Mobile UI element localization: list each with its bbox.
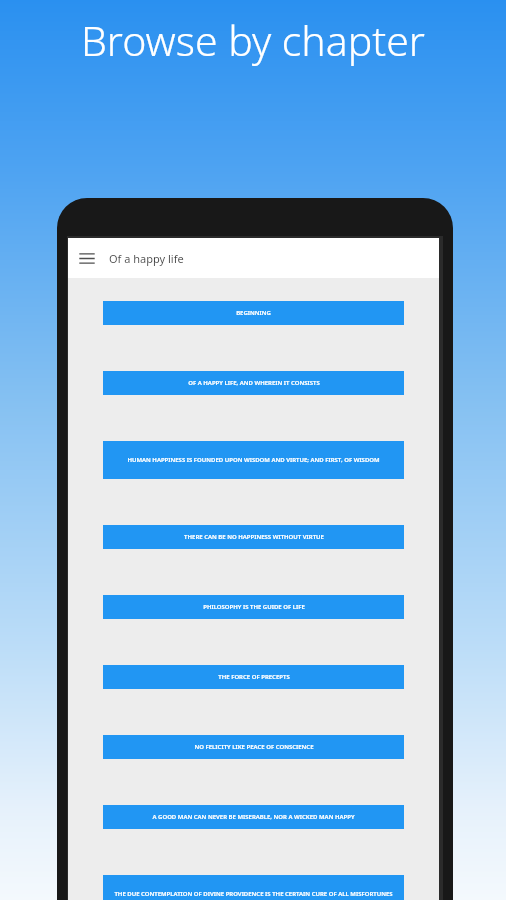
button[interactable]: BEGINNING — [103, 301, 404, 325]
button[interactable]: THE DUE CONTEMPLATION OF DIVINE PROVIDEN… — [103, 875, 404, 900]
button[interactable]: THE FORCE OF PRECEPTS — [103, 665, 404, 689]
button[interactable]: OF A HAPPY LIFE, AND WHEREIN IT CONSISTS — [103, 371, 404, 395]
staticText: THE DUE CONTEMPLATION OF DIVINE PROVIDEN… — [114, 890, 393, 898]
staticText: Of a happy life — [109, 251, 184, 266]
button[interactable]: THERE CAN BE NO HAPPINESS WITHOUT VIRTUE — [103, 525, 404, 549]
staticText: OF A HAPPY LIFE, AND WHEREIN IT CONSISTS — [188, 379, 320, 387]
staticText: THERE CAN BE NO HAPPINESS WITHOUT VIRTUE — [184, 533, 324, 541]
button[interactable]: A GOOD MAN CAN NEVER BE MISERABLE, NOR A… — [103, 805, 404, 829]
button[interactable]: PHILOSOPHY IS THE GUIDE OF LIFE — [103, 595, 404, 619]
staticText: A GOOD MAN CAN NEVER BE MISERABLE, NOR A… — [152, 813, 355, 821]
staticText: Browse by chapter — [81, 12, 425, 68]
staticText: NO FELICITY LIKE PEACE OF CONSCIENCE — [194, 743, 314, 751]
staticText: HUMAN HAPPINESS IS FOUNDED UPON WISDOM A… — [127, 456, 380, 464]
button[interactable]: HUMAN HAPPINESS IS FOUNDED UPON WISDOM A… — [103, 441, 404, 479]
button[interactable]: NO FELICITY LIKE PEACE OF CONSCIENCE — [103, 735, 404, 759]
staticText: BEGINNING — [236, 309, 271, 317]
staticText: THE FORCE OF PRECEPTS — [218, 673, 290, 681]
staticText: PHILOSOPHY IS THE GUIDE OF LIFE — [203, 603, 305, 611]
button[interactable]: Open navigation menu — [73, 244, 101, 272]
